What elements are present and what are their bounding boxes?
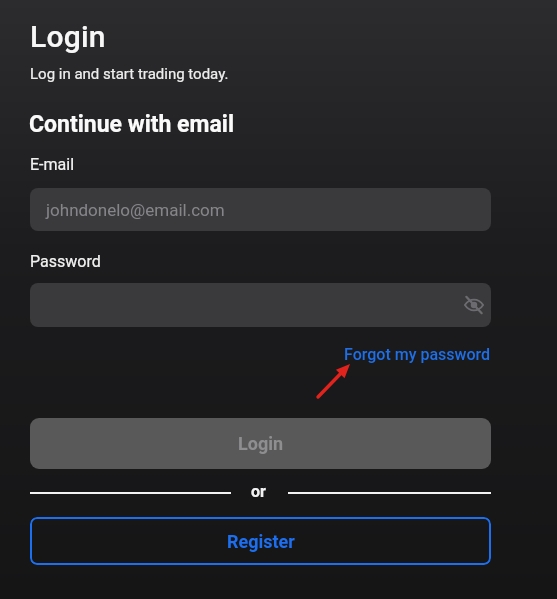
staticText: or [251,482,266,501]
staticText: Continue with email [29,111,234,138]
staticText: Register [227,531,295,552]
staticText: E-mail [30,155,75,174]
button[interactable]: johndonelo@email.com [30,188,491,231]
button[interactable]: Register [30,517,491,565]
button[interactable]: Login [30,418,491,469]
staticText: Log in and start trading today. [30,65,229,83]
staticText: Forgot my password [344,345,491,364]
staticText: Login [238,433,284,454]
button[interactable]: Forgot my password [280,342,491,366]
button[interactable] [30,283,491,327]
staticText: Login [30,19,106,54]
staticText: Password [30,252,101,271]
staticText: johndonelo@email.com [46,200,225,220]
